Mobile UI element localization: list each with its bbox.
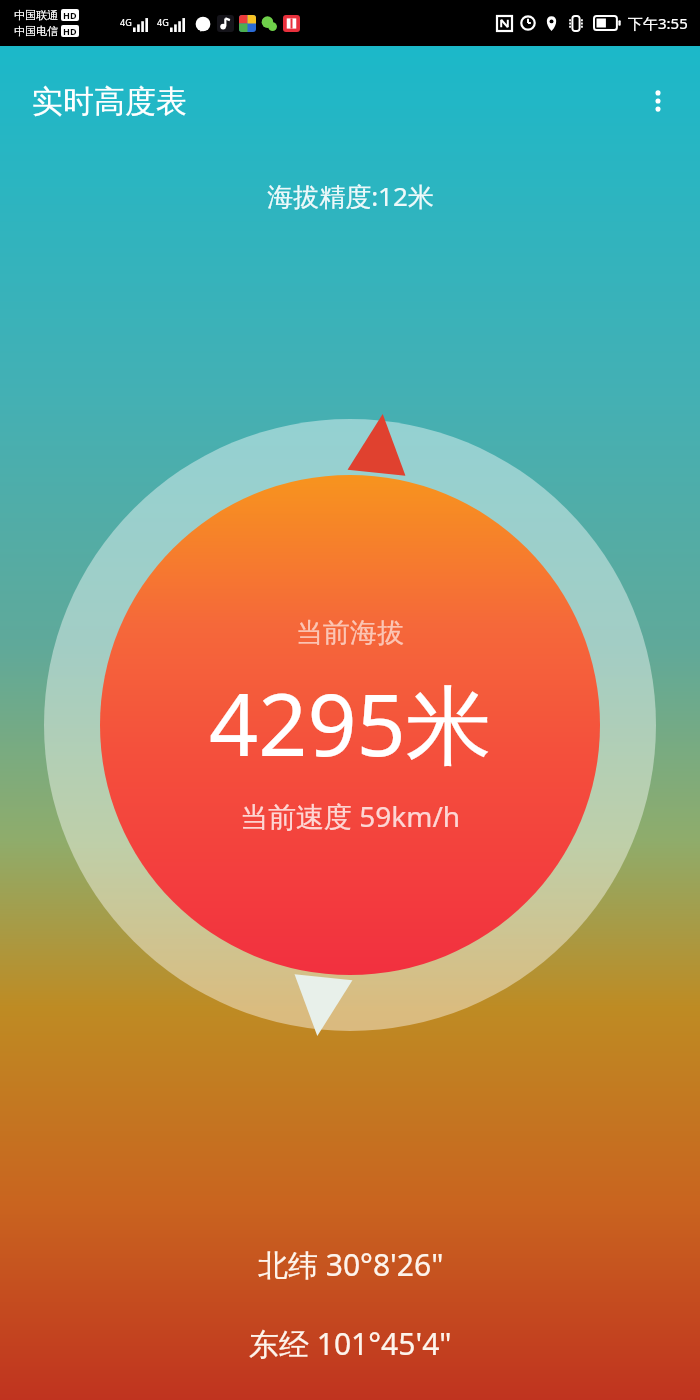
button[interactable]: 当前海拔: [44, 419, 656, 1031]
button[interactable]: More options: [630, 73, 686, 129]
staticText: 北纬 30°8'26": [258, 1244, 444, 1285]
staticText: 中国电信: [14, 24, 58, 38]
staticText: 当前海拔: [296, 616, 404, 650]
staticText: 中国联通: [14, 8, 58, 22]
staticText: HD: [63, 9, 77, 21]
staticText: 东经 101°45'4": [249, 1323, 452, 1364]
staticText: 实时高度表: [32, 82, 187, 121]
staticText: 4G: [120, 16, 132, 28]
staticText: 海拔精度:12米: [267, 178, 434, 214]
staticText: 当前速度 59km/h: [240, 797, 461, 835]
staticText: 下午3:55: [628, 13, 688, 33]
staticText: HD: [63, 25, 77, 37]
staticText: 4G: [157, 16, 169, 28]
staticText: 4295米: [209, 664, 492, 781]
